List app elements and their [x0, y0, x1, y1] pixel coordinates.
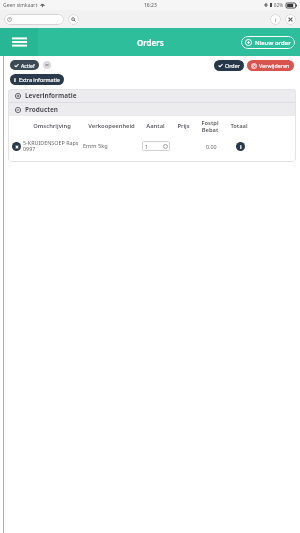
staticText: Extra informatie: [19, 76, 60, 83]
button[interactable]: Leverinformatie: [8, 89, 296, 102]
button[interactable]: Page info: [270, 14, 281, 25]
button[interactable]: Remove product: [12, 142, 21, 151]
staticText: i: [14, 76, 16, 84]
staticText: 82%: [274, 2, 284, 8]
staticText: Nieuw order: [255, 39, 291, 47]
button[interactable]: Close: [285, 14, 296, 25]
staticText: Verwijderen: [259, 62, 290, 69]
staticText: Leverinformatie: [25, 91, 77, 100]
staticText: Totaal: [230, 122, 248, 130]
staticText: Actief: [21, 62, 35, 69]
button[interactable]: i: [10, 74, 64, 85]
staticText: 16:23: [144, 2, 157, 9]
staticText: 5-KRUIDENSOEP Raps 0997: [23, 139, 83, 153]
button[interactable]: Order: [214, 60, 244, 71]
button[interactable]: Open navigation menu: [0, 28, 38, 56]
staticText: Orders: [137, 37, 164, 48]
staticText: Emm 5kg: [83, 142, 108, 150]
staticText: Fostpl Bebat: [201, 119, 219, 134]
staticText: Verkoopeenheid: [88, 122, 135, 130]
staticText: 1: [145, 143, 149, 150]
staticText: Geen simkaart: [3, 2, 38, 9]
staticText: Producten: [25, 105, 58, 114]
staticText: 0.00: [206, 143, 217, 150]
button[interactable]: Clear filter: [43, 61, 51, 69]
button[interactable]: Address bar: [4, 14, 64, 25]
staticText: i: [275, 16, 277, 24]
staticText: Aantal: [146, 122, 165, 130]
button[interactable]: Actief: [10, 60, 39, 70]
staticText: Prijs: [177, 122, 190, 130]
staticText: Order: [225, 62, 240, 69]
button[interactable]: Verwijderen: [247, 60, 294, 71]
button[interactable]: Product info: [236, 142, 245, 151]
button[interactable]: Aantal: [142, 141, 170, 151]
staticText: i: [240, 143, 242, 150]
button[interactable]: Nieuw order: [241, 36, 295, 49]
button[interactable]: Producten: [8, 103, 296, 116]
staticText: Omschrijving: [33, 122, 71, 130]
button[interactable]: Search: [68, 14, 79, 25]
